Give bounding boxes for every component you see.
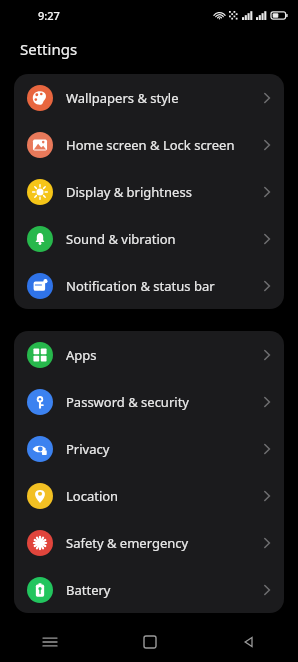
staticText: Wallpapers & style <box>66 89 262 107</box>
button[interactable]: Battery <box>14 566 284 613</box>
staticText: Safety & emergency <box>66 534 262 552</box>
button[interactable]: Sound & vibration <box>14 215 284 262</box>
button[interactable]: Privacy <box>14 425 284 472</box>
staticText: Privacy <box>66 440 262 458</box>
button[interactable]: Safety & emergency <box>14 519 284 566</box>
staticText: 9:27 <box>38 8 60 23</box>
button[interactable]: Password & security <box>14 378 284 425</box>
button[interactable]: Back <box>199 622 298 662</box>
staticText: Display & brightness <box>66 183 262 201</box>
staticText: Notification & status bar <box>66 277 262 295</box>
staticText: Apps <box>66 346 262 364</box>
button[interactable]: Apps <box>14 331 284 378</box>
button[interactable]: Home <box>100 622 199 662</box>
staticText: Location <box>66 487 262 505</box>
button[interactable]: Display & brightness <box>14 168 284 215</box>
button[interactable]: Wallpapers & style <box>14 74 284 121</box>
staticText: Home screen & Lock screen <box>66 136 262 154</box>
button[interactable]: Notification & status bar <box>14 262 284 309</box>
staticText: Sound & vibration <box>66 230 262 248</box>
staticText: Password & security <box>66 393 262 411</box>
staticText: Battery <box>66 581 262 599</box>
button[interactable]: Location <box>14 472 284 519</box>
button[interactable]: Recents <box>0 622 100 662</box>
button[interactable]: Home screen & Lock screen <box>14 121 284 168</box>
staticText: Settings <box>20 39 78 59</box>
